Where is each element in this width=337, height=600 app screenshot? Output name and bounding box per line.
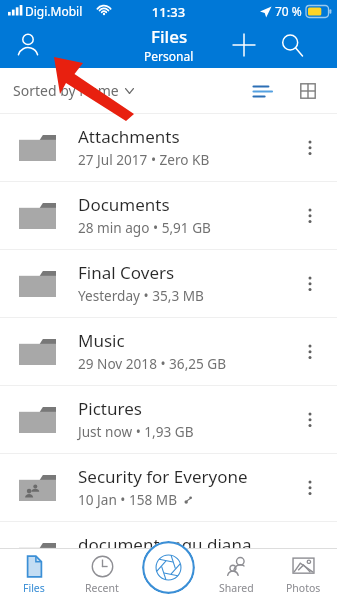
button[interactable]: Files	[0, 549, 68, 600]
staticText: Pictures	[78, 397, 142, 420]
button[interactable]: Final Covers	[0, 250, 337, 317]
staticText: Documents	[78, 193, 170, 216]
staticText: Music	[78, 329, 125, 352]
staticText: Digi.Mobil	[25, 3, 83, 19]
staticText: Final Covers	[78, 261, 175, 284]
staticText: Sorted by Name	[13, 81, 119, 100]
button[interactable]: Search	[268, 22, 316, 68]
button[interactable]: Documents	[0, 182, 337, 249]
button[interactable]: More options	[290, 318, 330, 385]
staticText: 27 Jul 2017 • Zero KB	[78, 150, 210, 169]
button[interactable]: Pictures	[0, 386, 337, 453]
staticText: 11:33	[0, 3, 337, 21]
button[interactable]: Account	[3, 22, 53, 68]
staticText: 28 min ago • 5,91 GB	[78, 218, 211, 237]
button[interactable]: List view	[241, 70, 283, 112]
button[interactable]: Add	[220, 22, 268, 68]
staticText: 70 %	[275, 3, 302, 19]
staticText: Files	[151, 25, 188, 48]
button[interactable]: Photos	[270, 549, 337, 600]
button[interactable]: Recent	[68, 549, 136, 600]
button[interactable]: Music	[0, 318, 337, 385]
button[interactable]: Security for Everyone	[0, 454, 337, 521]
staticText: documents aqu diana	[78, 533, 252, 548]
button[interactable]: More options	[290, 114, 330, 181]
button[interactable]: More options	[290, 182, 330, 249]
staticText: Files	[23, 581, 45, 595]
button[interactable]: Grid view	[287, 70, 329, 112]
button[interactable]: Attachments	[0, 114, 337, 181]
staticText: Shared	[219, 581, 254, 595]
staticText: 29 Nov 2018 • 36,25 GB	[78, 354, 227, 373]
button[interactable]: More options	[290, 250, 330, 317]
button[interactable]: documents aqu diana	[0, 522, 337, 548]
staticText: Personal	[144, 48, 194, 64]
button[interactable]: Shared	[203, 549, 270, 600]
staticText: Just now • 1,93 GB	[78, 422, 194, 441]
staticText: Attachments	[78, 125, 180, 148]
staticText: Recent	[85, 581, 119, 595]
button[interactable]: More options	[290, 386, 330, 453]
button[interactable]: Sorted by Name	[13, 81, 134, 100]
button[interactable]: More options	[290, 454, 330, 521]
staticText: Photos	[286, 581, 321, 595]
staticText: Security for Everyone	[78, 465, 248, 488]
staticText: Yesterday • 35,3 MB	[78, 286, 204, 305]
staticText: 10 Jan • 158 MB	[78, 490, 178, 509]
button[interactable]: Scan	[142, 541, 195, 594]
